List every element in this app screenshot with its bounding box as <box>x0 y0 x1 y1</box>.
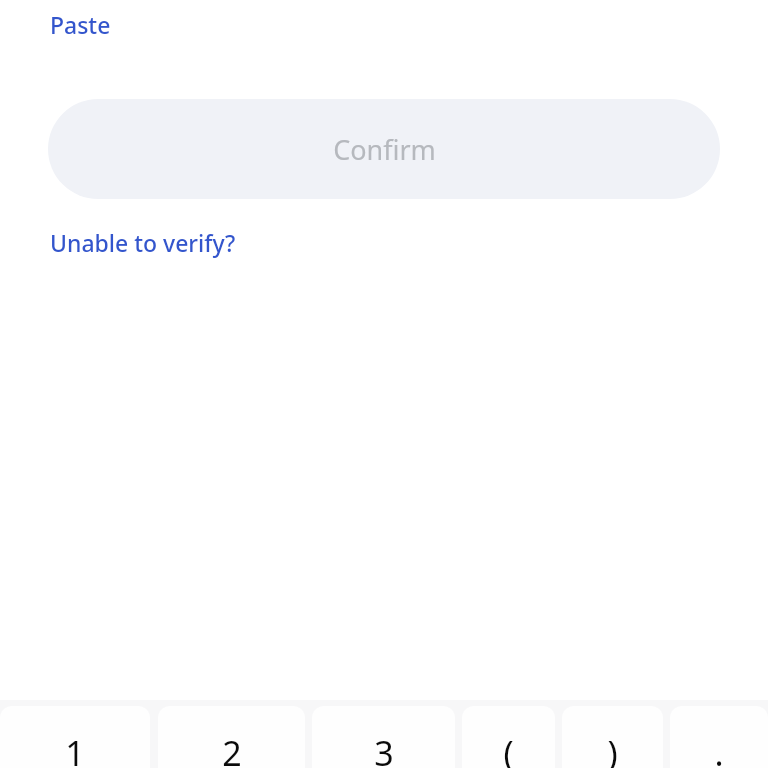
button[interactable]: Key ) <box>562 706 663 768</box>
button[interactable]: Key 1 <box>0 706 150 768</box>
staticText: Unable to verify? <box>50 227 236 258</box>
staticText: ) <box>607 730 618 768</box>
staticText: . <box>714 730 724 768</box>
staticText: ( <box>503 730 514 768</box>
staticText: Paste <box>50 9 111 40</box>
button[interactable]: Key ( <box>462 706 555 768</box>
staticText: 2 <box>222 730 242 768</box>
staticText: 1 <box>65 730 85 768</box>
button[interactable]: Key 2 <box>158 706 305 768</box>
staticText: 3 <box>374 730 394 768</box>
button[interactable]: Unable to verify? <box>50 227 236 258</box>
staticText: Confirm <box>333 131 436 168</box>
button[interactable]: Key . <box>670 706 768 768</box>
button[interactable]: Key 3 <box>312 706 455 768</box>
button[interactable]: Confirm <box>48 99 720 199</box>
button[interactable]: Paste <box>50 9 111 40</box>
